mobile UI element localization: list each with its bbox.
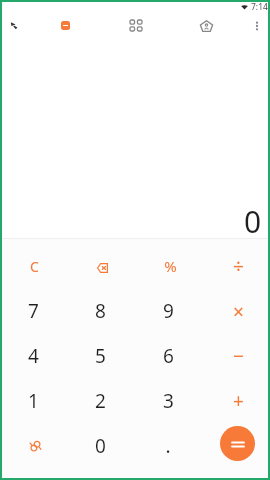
staticText: 0 <box>95 433 106 459</box>
button[interactable]: 8 <box>67 288 134 333</box>
button[interactable]: 0 <box>67 423 134 468</box>
staticText: − <box>233 343 244 369</box>
staticText: 0 <box>244 201 262 242</box>
button[interactable]: + <box>202 378 270 423</box>
staticText: 4 <box>28 343 39 369</box>
staticText: 5 <box>95 343 106 369</box>
button[interactable]: 5 <box>67 333 134 378</box>
button[interactable]: Calculator mode <box>52 13 78 38</box>
staticText: 9 <box>163 298 174 324</box>
staticText: 7 <box>28 298 39 324</box>
button[interactable]: % <box>134 244 202 288</box>
button[interactable]: 1 <box>0 378 67 423</box>
button[interactable]: 3 <box>134 378 202 423</box>
staticText: ÷ <box>233 253 244 279</box>
staticText: 7:14 <box>251 1 268 13</box>
button[interactable]: 9 <box>134 288 202 333</box>
staticText: % <box>164 256 177 276</box>
button[interactable]: . <box>134 423 202 468</box>
button[interactable]: − <box>202 333 270 378</box>
button[interactable]: 7 <box>0 288 67 333</box>
button[interactable]: 2 <box>67 378 134 423</box>
button[interactable]: Scientific mode <box>0 423 67 468</box>
staticText: 8 <box>95 298 106 324</box>
button[interactable]: C <box>0 244 67 288</box>
staticText: × <box>233 299 244 325</box>
staticText: 1 <box>28 388 39 414</box>
button[interactable]: Home <box>193 13 219 38</box>
button[interactable]: × <box>202 288 270 333</box>
button[interactable]: 6 <box>134 333 202 378</box>
staticText: 3 <box>163 388 174 414</box>
staticText: C <box>30 257 39 276</box>
staticText: . <box>165 433 171 459</box>
button[interactable]: Apps <box>123 13 149 38</box>
staticText: + <box>233 388 244 414</box>
staticText: 6 <box>163 343 174 369</box>
button[interactable]: Backspace <box>67 244 134 288</box>
button[interactable]: Equals <box>220 426 255 461</box>
button[interactable]: ÷ <box>202 244 270 288</box>
button[interactable]: 4 <box>0 333 67 378</box>
staticText: 2 <box>95 388 106 414</box>
button[interactable]: More options <box>244 13 270 38</box>
